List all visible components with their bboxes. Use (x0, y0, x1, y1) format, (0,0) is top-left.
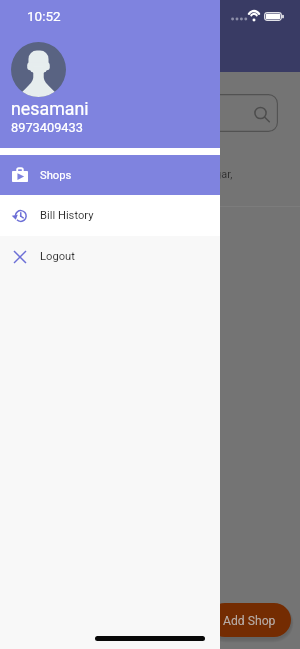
staticText: nesamani (11, 98, 89, 119)
staticText: Bill History (40, 209, 94, 222)
staticText: Add Shop (223, 614, 276, 628)
staticText: 10:52 (27, 8, 61, 24)
staticText: 8973409433 (11, 120, 83, 135)
button[interactable]: Bill History (0, 195, 220, 236)
button[interactable]: Add Shop (208, 603, 291, 637)
staticText: Anna nagar, (175, 168, 233, 181)
staticText: Logout (40, 250, 75, 263)
button[interactable]: Logout (0, 236, 220, 277)
staticText: Shops (40, 169, 72, 182)
button[interactable]: Shops (0, 155, 220, 195)
